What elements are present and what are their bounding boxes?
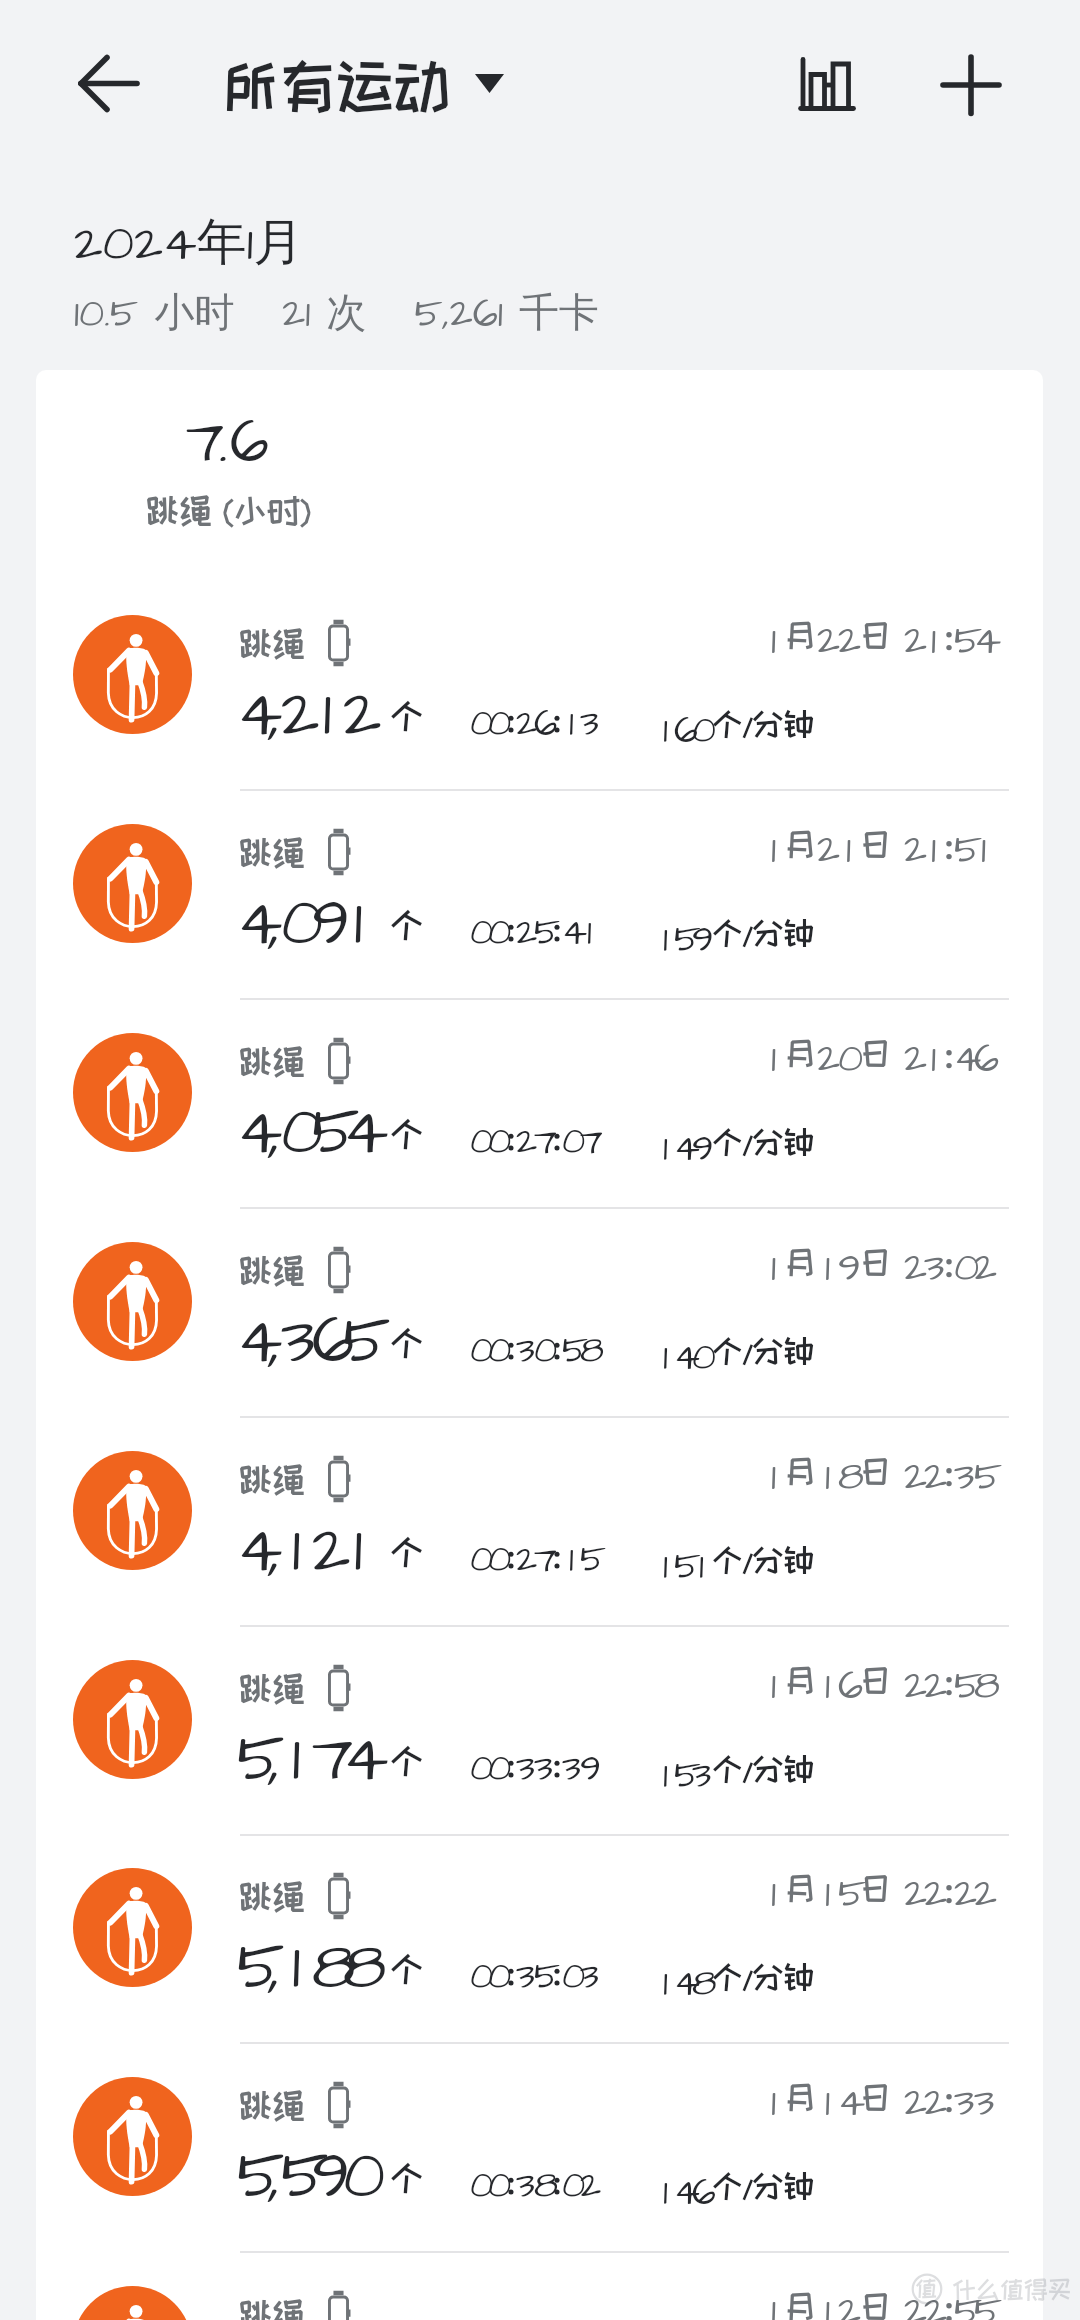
staticText: 4	[562, 908, 580, 959]
staticText: 月	[784, 1453, 817, 1488]
staticText: 月	[784, 617, 817, 652]
staticText: 4	[237, 877, 268, 970]
staticText: 2024年1月	[74, 210, 304, 279]
staticText: 1	[663, 914, 668, 967]
staticText: 2	[904, 2285, 924, 2320]
staticText: 日	[859, 617, 892, 652]
staticText: 2	[838, 2285, 859, 2320]
button[interactable]: 跳绳	[36, 1207, 1043, 1416]
staticText: 3	[281, 1295, 312, 1388]
staticText: 日	[859, 1870, 892, 1905]
button[interactable]: 跳绳	[36, 1416, 1043, 1625]
staticText: 0	[470, 2161, 488, 2212]
staticText: 5	[674, 1541, 692, 1594]
staticText: ,	[269, 2130, 281, 2223]
button[interactable]: Back	[60, 40, 156, 136]
staticText: 2	[281, 668, 312, 761]
staticText: 0	[488, 908, 506, 959]
staticText: 跳绳	[239, 1670, 306, 1706]
staticText: 跳绳	[239, 834, 306, 870]
button[interactable]: Statistics	[790, 47, 864, 121]
staticText: 1	[771, 2076, 777, 2132]
staticText: 0	[281, 877, 312, 970]
button[interactable]: 跳绳	[36, 789, 1043, 998]
staticText: 2	[904, 1241, 924, 1297]
staticText: 0	[470, 699, 488, 750]
staticText: 0	[562, 2161, 580, 2212]
staticText: 2	[838, 614, 859, 670]
staticText: 1	[825, 1241, 831, 1297]
staticText: 个/分钟	[712, 1125, 814, 1158]
staticText: 0	[954, 1241, 974, 1297]
staticText: 个/分钟	[712, 1960, 814, 1993]
staticText: 4	[674, 1958, 692, 2011]
staticText: 4	[343, 1713, 374, 1806]
staticText: 日	[859, 2079, 892, 2114]
staticText: 月	[784, 2288, 817, 2320]
staticText: 个	[390, 1115, 424, 1151]
staticText: 3	[580, 1952, 598, 2003]
staticText: 3	[534, 1744, 552, 1795]
button[interactable]: 跳绳	[36, 580, 1043, 789]
staticText: 1	[323, 668, 332, 761]
staticText: 个	[390, 1950, 424, 1986]
button[interactable]: 跳绳	[36, 2251, 1043, 2320]
staticText: .	[219, 400, 228, 486]
staticText: ,	[269, 1921, 281, 2014]
staticText: 0	[488, 1326, 506, 1377]
staticText: 跳绳	[239, 1461, 306, 1497]
staticText: 7	[312, 1713, 343, 1806]
button[interactable]: 跳绳	[36, 998, 1043, 1207]
staticText: 个/分钟	[712, 1334, 814, 1367]
staticText: 个	[390, 906, 424, 942]
staticText: 1	[825, 2285, 831, 2320]
staticText: 2	[924, 2285, 944, 2320]
staticText: 3	[692, 1750, 710, 1803]
staticText: 1	[569, 699, 574, 750]
staticText: 1	[663, 1123, 668, 1176]
staticText: 1	[825, 1867, 831, 1923]
staticText: 5	[974, 2285, 994, 2320]
staticText: 2	[974, 1241, 994, 1297]
staticText: 2	[954, 1867, 974, 1923]
staticText: ,	[269, 1086, 281, 1179]
staticText: 日	[859, 826, 892, 861]
staticText: 1	[771, 1659, 777, 1715]
staticText: 2	[904, 823, 924, 879]
staticText: 日	[859, 2288, 892, 2320]
staticText: 1	[931, 823, 937, 879]
staticText: 个/分钟	[712, 2169, 814, 2202]
staticText: 个/分钟	[712, 1752, 814, 1785]
staticText: ,	[269, 1713, 281, 1806]
staticText: 月	[784, 1035, 817, 1070]
button[interactable]: Add	[931, 44, 1011, 124]
button[interactable]: 所有运动	[222, 54, 504, 116]
staticText: 0	[562, 1952, 580, 2003]
staticText: 1	[771, 1032, 777, 1088]
staticText: 个/分钟	[712, 1543, 814, 1576]
button[interactable]: 跳绳	[36, 1625, 1043, 1834]
staticText: 0	[692, 1332, 710, 1385]
staticText: 值	[915, 2276, 938, 2300]
staticText: 1	[587, 908, 592, 959]
staticText: 1	[771, 1450, 777, 1506]
staticText: 3	[516, 1744, 534, 1795]
staticText: 0	[488, 1117, 506, 1168]
staticText: 1	[846, 823, 852, 879]
staticText: 2	[516, 699, 534, 750]
staticText: 0	[534, 1326, 552, 1377]
staticText: 2	[817, 614, 838, 670]
staticText: 4	[237, 1504, 268, 1597]
staticText: 0	[488, 2161, 506, 2212]
button[interactable]: 跳绳	[36, 1833, 1043, 2042]
staticText: 2	[924, 1450, 944, 1506]
staticText: 6	[230, 400, 260, 486]
staticText: 5	[674, 914, 692, 967]
staticText: 2	[904, 1450, 924, 1506]
staticText: 2	[343, 668, 374, 761]
staticText: 7	[534, 1535, 552, 1586]
staticText: ,	[269, 668, 281, 761]
staticText: 8	[692, 1958, 710, 2011]
button[interactable]: 跳绳	[36, 2042, 1043, 2251]
staticText: 月	[784, 1870, 817, 1905]
